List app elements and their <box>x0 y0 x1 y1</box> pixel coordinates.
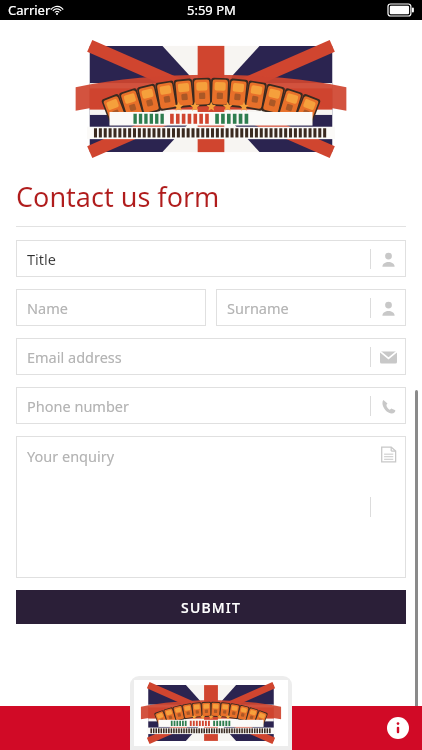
staticText: SUBMIT <box>181 598 242 617</box>
button[interactable]: Email address <box>16 338 406 375</box>
staticText: Phone number <box>27 396 129 416</box>
button[interactable]: Information <box>387 717 409 739</box>
button[interactable]: Title <box>16 240 406 277</box>
staticText: Title <box>27 249 56 269</box>
button[interactable]: SUBMIT <box>16 590 406 624</box>
staticText: Your enquiry <box>27 446 115 466</box>
button[interactable]: Name <box>16 289 206 326</box>
staticText: Surname <box>227 298 289 318</box>
button[interactable]: Bush Hill Park logo <box>130 676 292 750</box>
button[interactable]: Surname <box>216 289 406 326</box>
button[interactable]: Your enquiry <box>16 436 406 578</box>
staticText: Email address <box>27 347 122 367</box>
staticText: Contact us form <box>16 178 220 215</box>
button[interactable]: Phone number <box>16 387 406 424</box>
staticText: 5:59 PM <box>187 1 236 19</box>
staticText: Carrier <box>8 1 51 19</box>
staticText: Name <box>27 298 68 318</box>
